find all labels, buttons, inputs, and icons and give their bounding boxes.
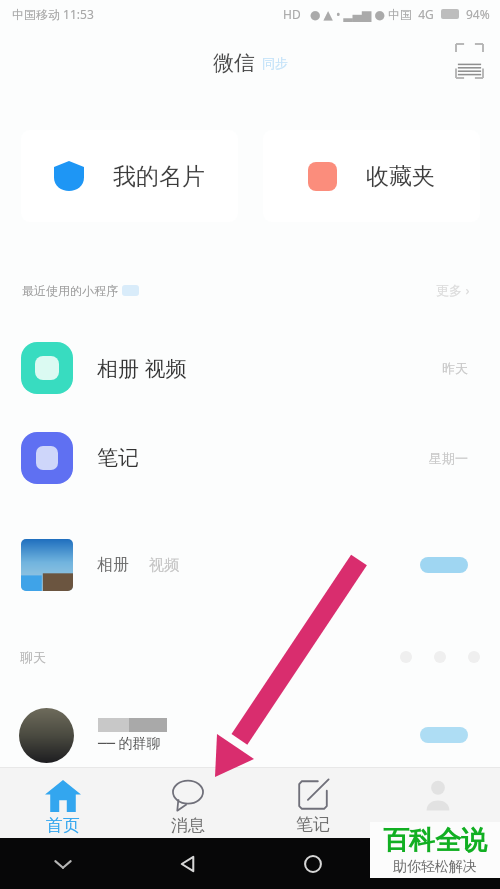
staticText: 相册 bbox=[97, 555, 129, 575]
staticText: 微信 bbox=[213, 50, 255, 76]
other: Back bbox=[176, 852, 200, 876]
staticText: 相册 视频 bbox=[97, 354, 187, 383]
other: Hide keyboard bbox=[51, 852, 75, 876]
staticText: 星期一 bbox=[429, 450, 468, 466]
staticText: 视频 bbox=[149, 556, 179, 575]
staticText: 94% bbox=[466, 6, 490, 22]
staticText: 同步 bbox=[262, 55, 288, 71]
other: Recent apps bbox=[426, 852, 450, 876]
staticText: 聊天 bbox=[20, 649, 46, 665]
staticText: 中国移动 11:53 bbox=[12, 6, 94, 22]
staticText: 助你轻松解决 bbox=[393, 858, 477, 876]
staticText: 我的名片 bbox=[113, 162, 205, 191]
staticText: 首页 bbox=[46, 815, 80, 836]
button[interactable]: 收藏夹 bbox=[263, 130, 480, 222]
staticText: 最近使用的小程序 bbox=[22, 283, 118, 298]
staticText: 百科全说 bbox=[383, 824, 487, 857]
staticText: 笔记 bbox=[97, 445, 139, 471]
button[interactable]: 首页 bbox=[0, 768, 125, 838]
staticText: 收藏夹 bbox=[366, 162, 435, 191]
button[interactable]: ── 的群聊 bbox=[0, 696, 500, 774]
button[interactable]: Profile bbox=[375, 768, 500, 838]
button[interactable]: 笔记 bbox=[250, 768, 375, 838]
staticText: HD ● ▲ • ▂▄▆ ● 中国 4G bbox=[283, 6, 434, 22]
button[interactable]: 相册 视频 bbox=[0, 322, 500, 414]
button[interactable]: 相册 bbox=[0, 519, 500, 611]
button[interactable]: 笔记 bbox=[0, 412, 500, 504]
button[interactable]: 消息 bbox=[125, 768, 250, 838]
staticText: 昨天 bbox=[442, 360, 468, 376]
staticText: ── 的群聊 bbox=[98, 733, 161, 752]
button[interactable]: 我的名片 bbox=[21, 130, 238, 222]
staticText: 更多 › bbox=[436, 281, 470, 299]
staticText: 消息 bbox=[171, 815, 205, 836]
other: Home bbox=[301, 852, 325, 876]
staticText: 笔记 bbox=[296, 814, 330, 835]
button[interactable]: Scan bbox=[452, 44, 486, 78]
